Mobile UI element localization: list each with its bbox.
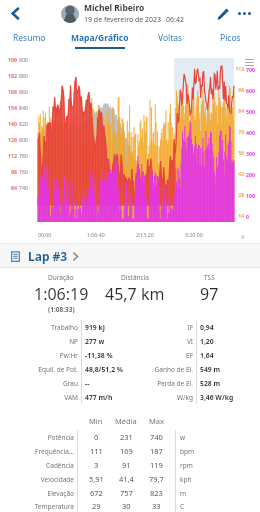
staticText: -- [85, 379, 90, 388]
staticText: 91 [122, 460, 131, 470]
staticText: 2:13:20 [136, 231, 154, 238]
staticText: 126 [1, 136, 17, 143]
staticText: w [180, 433, 186, 442]
staticText: 100 [246, 192, 255, 199]
staticText: 1,64 [200, 351, 214, 360]
staticText: IF [187, 323, 193, 332]
staticText: 112 [1, 152, 17, 159]
button[interactable]: Mais opções [234, 3, 255, 24]
staticText: Trabalho [51, 323, 78, 332]
staticText: 154 [1, 104, 17, 111]
staticText: 06:42 [166, 15, 184, 25]
staticText: 98 [1, 168, 17, 175]
staticText: 84 [233, 108, 244, 115]
staticText: 231 [120, 432, 133, 442]
staticText: 19 de fevereiro de 2023 [84, 15, 162, 25]
staticText: Michel Ribeiro [84, 2, 145, 14]
staticText: VI [186, 337, 193, 346]
staticText: Ganho de El. [154, 365, 193, 374]
staticText: NP [69, 337, 78, 346]
staticText: Equil. de Pot. [38, 365, 78, 374]
staticText: rpm [180, 461, 193, 470]
staticText: Potência [47, 433, 74, 442]
staticText: 48,8/51,2 % [85, 365, 123, 374]
staticText: 196 [1, 56, 17, 63]
staticText: 740 [150, 432, 163, 442]
staticText: 780 [19, 152, 28, 159]
staticText: Picos [220, 32, 241, 44]
staticText: Min [89, 416, 103, 426]
button[interactable]: Lap #3 [0, 244, 260, 268]
staticText: 820 [19, 120, 28, 127]
staticText: Cadência [46, 461, 74, 470]
staticText: Média [115, 416, 137, 426]
staticText: 549 m [200, 365, 221, 374]
staticText: Lap #3 [28, 248, 68, 264]
staticText: Velocidade [40, 475, 74, 484]
staticText: 5,91 [89, 474, 104, 484]
staticText: TSS [204, 273, 215, 282]
staticText: 1:06:40 [87, 231, 105, 238]
button[interactable]: Picos [200, 26, 260, 54]
staticText: 400 [246, 129, 255, 136]
button[interactable]: Mapa/Gráfico [59, 26, 140, 54]
staticText: Resumo [13, 32, 46, 44]
staticText: Perda de El. [157, 379, 193, 388]
staticText: 1:06:19 [34, 283, 89, 305]
staticText: 112 [233, 66, 244, 73]
staticText: 3 [94, 460, 99, 470]
staticText: 672 [90, 488, 103, 498]
staticText: 200 [246, 171, 255, 178]
staticText: 880 [19, 72, 28, 79]
staticText: 0,94 [200, 323, 214, 332]
staticText: 0 [246, 213, 249, 220]
staticText: 300 [246, 150, 255, 157]
staticText: 900 [19, 56, 28, 63]
staticText: 182 [1, 72, 17, 79]
staticText: 757 [120, 488, 133, 498]
staticText: 42 [233, 171, 244, 178]
staticText: Voltas [158, 32, 183, 44]
staticText: 30 [122, 501, 131, 511]
staticText: 28 [233, 192, 244, 199]
staticText: Grau [63, 379, 78, 388]
staticText: 187 [150, 446, 163, 456]
staticText: bpm [180, 447, 195, 456]
button[interactable]: Resumo [0, 26, 59, 54]
staticText: 33 [152, 501, 161, 511]
staticText: 56 [233, 150, 244, 157]
staticText: 111 [90, 446, 103, 456]
staticText: Duração [48, 273, 74, 282]
staticText: 0 [94, 432, 99, 442]
staticText: 823 [150, 488, 163, 498]
staticText: 740 [19, 184, 28, 191]
button[interactable]: Voltar [3, 1, 27, 25]
staticText: 79,7 [149, 474, 164, 484]
staticText: 84 [1, 184, 17, 191]
staticText: 29 [92, 501, 101, 511]
staticText: 98 [233, 87, 244, 94]
staticText: Distância [121, 273, 149, 282]
staticText: 919 kJ [85, 323, 105, 332]
button[interactable]: Voltas [140, 26, 200, 54]
staticText: 119 [150, 460, 163, 470]
staticText: 3,46 W/kg [200, 393, 234, 402]
staticText: 70 [233, 129, 244, 136]
staticText: 700 [246, 66, 255, 73]
staticText: 600 [246, 87, 255, 94]
button[interactable]: Editar [212, 3, 233, 24]
staticText: 860 [19, 88, 28, 95]
staticText: Mapa/Gráfico [71, 32, 129, 44]
staticText: 97 [200, 283, 219, 305]
staticText: VAM [64, 393, 78, 402]
staticText: Elevação [47, 489, 74, 498]
button[interactable]: Opções do gráfico [243, 56, 255, 68]
staticText: Pw:Hr [59, 351, 78, 360]
staticText: Max [149, 416, 164, 426]
staticText: 3:20:00 [185, 231, 203, 238]
staticText: (1:08:33) [48, 305, 75, 314]
staticText: m [180, 489, 187, 498]
staticText: 277 w [85, 337, 105, 346]
staticText: C [180, 502, 185, 511]
staticText: 760 [19, 168, 28, 175]
